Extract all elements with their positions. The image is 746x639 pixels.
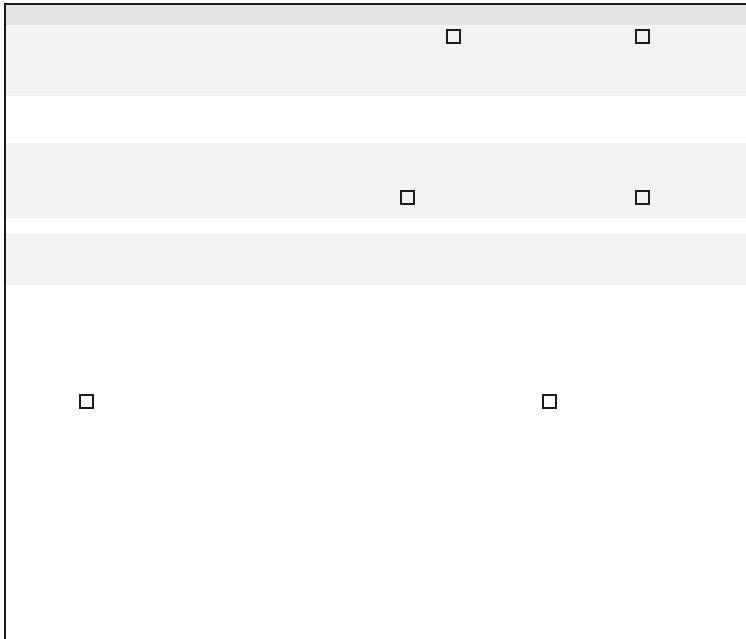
button[interactable]: Missing glyph xyxy=(635,190,650,205)
button[interactable] xyxy=(6,25,746,95)
button[interactable]: Missing glyph xyxy=(635,29,650,44)
button[interactable]: Missing glyph xyxy=(79,394,94,409)
button[interactable]: Missing glyph xyxy=(400,190,415,205)
button[interactable] xyxy=(6,143,746,217)
button[interactable]: Missing glyph xyxy=(446,29,461,44)
button[interactable]: Missing glyph xyxy=(542,394,557,409)
